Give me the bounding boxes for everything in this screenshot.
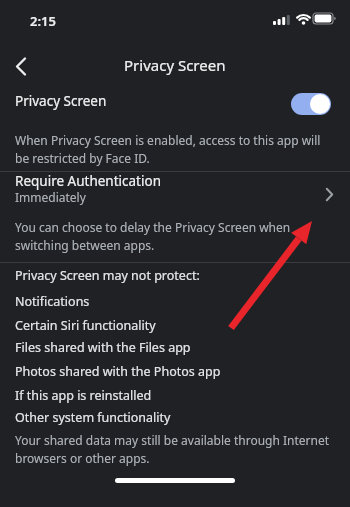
staticText: Photos shared with the Photos app xyxy=(15,363,221,380)
staticText: Files shared with the Files app xyxy=(15,339,191,356)
staticText: You can choose to delay the Privacy Scre… xyxy=(15,219,291,254)
staticText: Privacy Screen xyxy=(15,92,107,110)
staticText: Your shared data may still be available … xyxy=(15,432,330,467)
staticText: Privacy Screen xyxy=(124,55,226,75)
staticText: Immediately xyxy=(15,189,86,205)
staticText: Require Authentication xyxy=(15,172,161,190)
staticText: Other system functionality xyxy=(15,409,171,426)
button[interactable] xyxy=(8,53,34,79)
staticText: Privacy Screen may not protect: xyxy=(15,267,200,284)
staticText: 2:15 xyxy=(30,12,56,30)
staticText: Certain Siri functionality xyxy=(15,317,156,334)
staticText: When Privacy Screen is enabled, access t… xyxy=(15,132,321,167)
staticText: If this app is reinstalled xyxy=(15,387,152,404)
button[interactable]: Require Authentication xyxy=(0,172,350,262)
staticText: Notifications xyxy=(15,293,90,310)
button[interactable]: Privacy Screen xyxy=(0,86,350,124)
